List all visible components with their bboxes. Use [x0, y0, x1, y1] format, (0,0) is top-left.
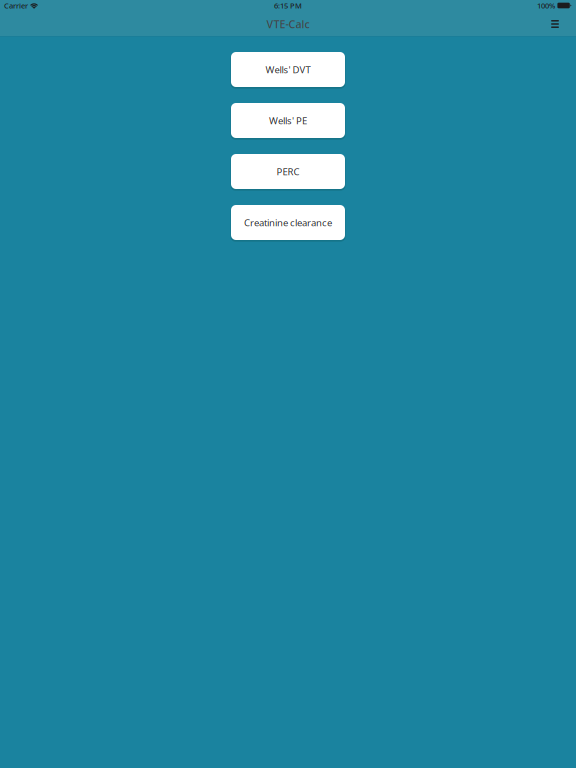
staticText: PERC [276, 165, 299, 178]
staticText: 100% [537, 0, 555, 11]
button[interactable]: Menu [542, 12, 568, 36]
button[interactable]: Creatinine clearance [231, 205, 345, 240]
button[interactable]: PERC [231, 154, 345, 189]
button[interactable]: Wells' PE [231, 103, 345, 138]
staticText: Creatinine clearance [244, 216, 332, 229]
button[interactable]: Wells' DVT [231, 52, 345, 87]
staticText: VTE-Calc [266, 17, 309, 31]
staticText: Carrier [4, 0, 28, 11]
staticText: 6:15 PM [274, 0, 302, 11]
staticText: Wells' DVT [265, 63, 310, 76]
staticText: Wells' PE [269, 114, 307, 127]
